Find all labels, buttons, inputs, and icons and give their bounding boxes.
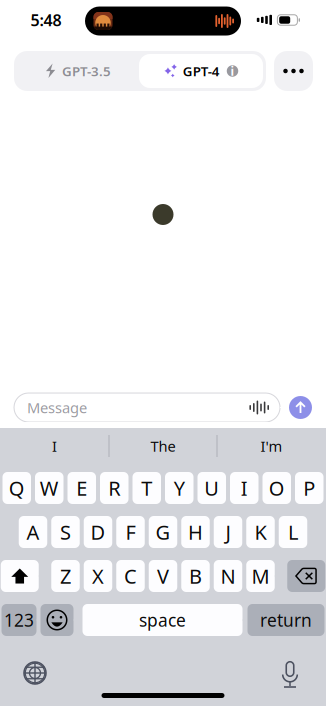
staticText: W (40, 475, 59, 501)
button[interactable]: GPT-3.5 (17, 54, 139, 88)
staticText: T (141, 475, 152, 501)
staticText: O (269, 475, 285, 501)
button[interactable]: More options (274, 51, 313, 91)
button[interactable]: GPT-4 (139, 54, 263, 88)
button[interactable]: N (214, 560, 242, 592)
staticText: V (157, 563, 169, 589)
staticText: B (189, 563, 202, 589)
button[interactable]: D (84, 516, 112, 548)
button[interactable]: Delete (287, 560, 325, 592)
button[interactable]: W (35, 472, 63, 504)
staticText: C (124, 563, 137, 589)
button[interactable]: Y (165, 472, 193, 504)
button[interactable]: H (181, 516, 210, 548)
staticText: J (225, 519, 230, 545)
staticText: The (150, 436, 175, 456)
button[interactable]: J (214, 516, 242, 548)
staticText: A (26, 519, 39, 545)
button[interactable]: B (181, 560, 210, 592)
staticText: I'm (260, 436, 282, 456)
staticText: Message (27, 398, 87, 417)
staticText: return (260, 608, 312, 631)
staticText: E (76, 475, 87, 501)
button[interactable]: Z (51, 560, 80, 592)
button[interactable]: V (149, 560, 177, 592)
staticText: S (60, 519, 71, 545)
button[interactable]: K (246, 516, 275, 548)
button[interactable]: Q (2, 472, 31, 504)
button[interactable]: I (0, 428, 108, 464)
staticText: L (288, 519, 298, 545)
button[interactable]: I (230, 472, 258, 504)
button[interactable]: Shift (1, 560, 39, 592)
button[interactable]: Dictate (282, 661, 298, 685)
staticText: GPT-3.5 (62, 62, 111, 80)
button[interactable]: R (100, 472, 128, 504)
staticText: Q (9, 475, 25, 501)
staticText: X (92, 563, 104, 589)
staticText: I (52, 436, 57, 456)
button[interactable]: L (279, 516, 307, 548)
button[interactable]: U (197, 472, 226, 504)
button[interactable]: S (51, 516, 80, 548)
staticText: U (204, 475, 219, 501)
button[interactable]: C (116, 560, 145, 592)
staticText: 123 (4, 608, 34, 631)
staticText: M (251, 563, 269, 589)
button[interactable]: T (132, 472, 161, 504)
staticText: i (230, 63, 234, 79)
button[interactable]: Next keyboard (24, 662, 46, 684)
staticText: Y (174, 475, 185, 501)
button[interactable]: E (67, 472, 96, 504)
staticText: N (220, 563, 235, 589)
staticText: K (254, 519, 266, 545)
button[interactable]: A (19, 516, 47, 548)
staticText: R (108, 475, 120, 501)
staticText: F (125, 519, 135, 545)
staticText: space (139, 608, 186, 631)
button[interactable]: Emoji (40, 604, 73, 636)
button[interactable]: X (84, 560, 112, 592)
button[interactable]: P (295, 472, 323, 504)
staticText: GPT-4 (183, 62, 220, 80)
staticText: H (188, 519, 203, 545)
button[interactable]: The (109, 428, 216, 464)
button[interactable]: I'm (217, 428, 325, 464)
button[interactable]: return (247, 604, 324, 636)
button[interactable]: space (82, 604, 242, 636)
button[interactable]: Send (289, 396, 312, 419)
button[interactable]: F (116, 516, 145, 548)
staticText: Z (60, 563, 71, 589)
staticText: P (303, 475, 315, 501)
staticText: D (90, 519, 105, 545)
button[interactable]: G (149, 516, 177, 548)
button[interactable]: M (246, 560, 275, 592)
staticText: I (241, 475, 248, 501)
button[interactable]: O (262, 472, 291, 504)
staticText: 5:48 (30, 9, 61, 31)
button[interactable]: Message (14, 393, 280, 422)
button[interactable]: 123 (1, 604, 36, 636)
staticText: G (155, 519, 170, 545)
